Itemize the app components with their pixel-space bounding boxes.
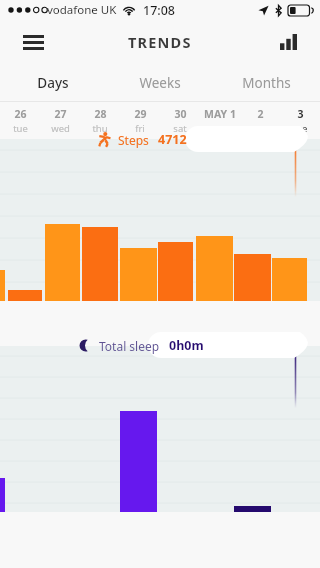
staticText: 3 xyxy=(297,107,304,121)
staticText: 29 xyxy=(134,107,147,121)
staticText: Steps xyxy=(118,132,149,148)
staticText: 2 xyxy=(257,107,264,121)
button[interactable]: 3 xyxy=(280,102,320,139)
button[interactable]: MAY 1 xyxy=(200,102,240,139)
button[interactable]: 30 xyxy=(160,102,200,139)
staticText: thu xyxy=(92,122,108,135)
button[interactable]: Weeks xyxy=(106,64,213,102)
staticText: fri xyxy=(135,122,145,135)
button[interactable]: 2 xyxy=(240,102,280,139)
staticText: 27 xyxy=(54,107,67,121)
staticText: vodafone UK xyxy=(47,2,117,18)
button[interactable]: 27 xyxy=(40,102,80,139)
staticText: TRENDS xyxy=(128,32,192,52)
staticText: Months xyxy=(242,74,291,92)
staticText: 17:08 xyxy=(143,2,176,19)
button[interactable]: 28 xyxy=(80,102,120,139)
button[interactable]: Days xyxy=(0,64,106,102)
staticText: Days xyxy=(37,74,69,92)
staticText: Weeks xyxy=(139,74,181,92)
staticText: 30 xyxy=(174,107,187,121)
staticText: tue xyxy=(292,122,308,135)
staticText: sat xyxy=(173,122,187,135)
staticText: mon xyxy=(250,122,271,135)
staticText: 26 xyxy=(14,107,27,121)
staticText: wed xyxy=(51,122,70,135)
button[interactable]: Total sleep xyxy=(0,332,320,358)
staticText: MAY 1 xyxy=(204,107,236,121)
staticText: tue xyxy=(13,122,28,135)
staticText: 4712 xyxy=(158,131,187,148)
button[interactable]: 29 xyxy=(120,102,160,139)
staticText: sun xyxy=(212,122,229,135)
button[interactable]: Steps chart xyxy=(0,139,320,301)
button[interactable]: Steps xyxy=(0,126,320,152)
button[interactable]: Months xyxy=(213,64,320,102)
staticText: Total sleep xyxy=(99,338,160,354)
staticText: 28 xyxy=(94,107,107,121)
button[interactable]: Statistics xyxy=(272,26,304,58)
button[interactable]: Menu xyxy=(16,25,50,59)
button[interactable]: 26 xyxy=(0,102,40,139)
staticText: 0h0m xyxy=(169,337,204,354)
button[interactable]: Sleep chart xyxy=(0,346,320,512)
